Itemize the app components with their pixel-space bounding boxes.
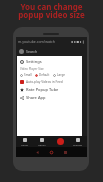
button[interactable]: Share App [20, 95, 79, 100]
staticText: Share App [26, 95, 46, 100]
staticText: Settings [73, 143, 83, 146]
staticText: Library [38, 143, 46, 146]
staticText: Large [57, 73, 66, 77]
staticText: Auto-play Videos in Feed [26, 80, 63, 84]
button[interactable]: Record [57, 138, 64, 145]
button[interactable]: Recents [60, 147, 71, 157]
staticText: Search [26, 49, 38, 54]
staticText: Video Player Size [20, 67, 44, 71]
button[interactable]: Settings [69, 136, 87, 147]
button[interactable]: Settings [20, 59, 79, 64]
button[interactable]: Back [32, 147, 43, 157]
staticText: Settings [26, 59, 42, 64]
button[interactable]: Home [46, 147, 57, 157]
staticText: Small [24, 73, 32, 77]
staticText: m.youtube.com/watch [18, 39, 55, 44]
staticText: Rate Popup Tube [26, 87, 59, 92]
button[interactable]: Home [16, 136, 33, 147]
button[interactable]: Library [33, 136, 51, 147]
staticText: Home [21, 143, 28, 146]
staticText: You can change [20, 1, 83, 12]
button[interactable]: Default [35, 73, 50, 77]
button[interactable]: Small [20, 73, 32, 77]
button[interactable]: Large [53, 73, 66, 77]
button[interactable]: Rate Popup Tube [20, 87, 79, 92]
button[interactable]: Auto-play Videos in Feed [20, 80, 79, 84]
staticText: Default [39, 73, 50, 77]
staticText: popup video size [18, 9, 85, 20]
